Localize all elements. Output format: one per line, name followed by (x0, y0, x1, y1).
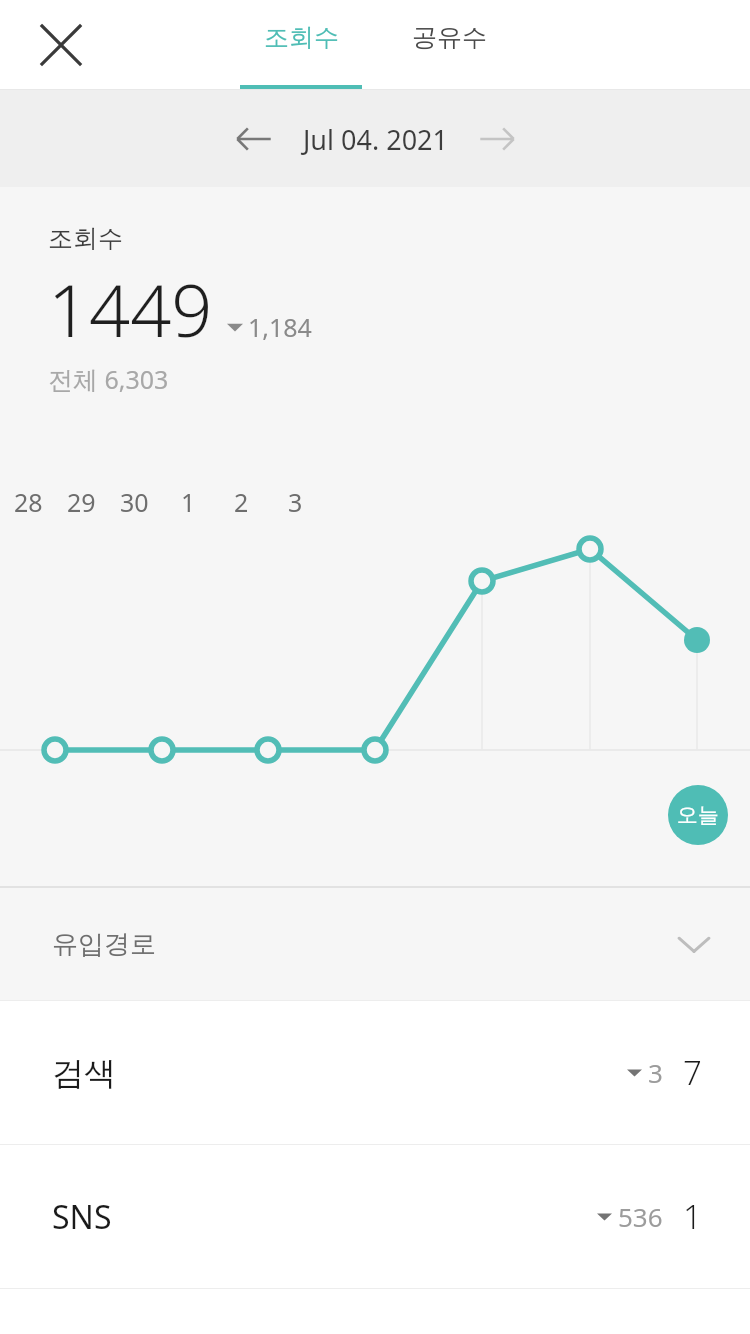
staticText: 검색 (52, 1053, 116, 1093)
button[interactable]: Next day (466, 108, 528, 170)
button[interactable]: 공유수 (388, 0, 510, 90)
button[interactable]: 조회수 (240, 0, 362, 90)
staticText: 3 (648, 1055, 663, 1090)
staticText: 30 (120, 485, 149, 519)
other: Expand (670, 920, 718, 968)
staticText: 28 (14, 485, 43, 519)
staticText: 유입경로 (52, 928, 156, 961)
button[interactable]: SNS (0, 1145, 750, 1288)
staticText: 전체 6,303 (48, 362, 169, 396)
staticText: 1449 (48, 260, 213, 358)
staticText: 29 (67, 485, 96, 519)
staticText: 7 (683, 1050, 702, 1095)
button[interactable]: 오늘 (668, 785, 728, 845)
button[interactable]: Previous day (223, 108, 285, 170)
staticText: 3 (288, 485, 303, 519)
staticText: 공유수 (412, 22, 487, 53)
staticText: 536 (618, 1199, 663, 1234)
staticText: Jul 04. 2021 (303, 121, 448, 158)
staticText: 1,184 (248, 310, 312, 344)
staticText: 조회수 (264, 22, 339, 53)
staticText: SNS (52, 1195, 112, 1239)
staticText: 2 (234, 485, 249, 519)
staticText: 1 (181, 485, 196, 519)
staticText: 1 (683, 1194, 702, 1239)
staticText: 조회수 (48, 223, 123, 254)
staticText: 오늘 (677, 802, 719, 828)
button[interactable]: Close (28, 12, 94, 78)
button[interactable]: 유입경로 (0, 888, 750, 1000)
button[interactable]: 검색 (0, 1001, 750, 1144)
